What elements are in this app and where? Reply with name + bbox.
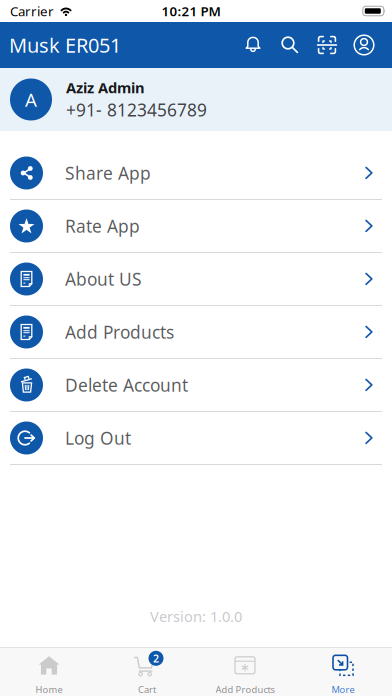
button[interactable]: Search [279, 34, 301, 56]
staticText: Add Products [215, 683, 274, 696]
staticText: Carrier [10, 2, 54, 20]
button[interactable]: Notifications [242, 34, 264, 56]
staticText: Add Products [65, 320, 174, 343]
button[interactable]: 2 [98, 648, 196, 696]
staticText: About US [65, 267, 142, 290]
button[interactable]: Add Products [0, 306, 392, 359]
button[interactable]: Delete Account [0, 359, 392, 412]
button[interactable]: A [0, 68, 392, 131]
button[interactable]: Add Products [196, 648, 294, 696]
button[interactable]: Rate App [0, 200, 392, 253]
button[interactable]: More [294, 648, 392, 696]
button[interactable]: Share App [0, 147, 392, 200]
button[interactable]: Scan [316, 34, 338, 56]
staticText: 2 [153, 651, 159, 665]
button[interactable]: Log Out [0, 412, 392, 465]
staticText: Home [35, 683, 62, 696]
button[interactable]: Profile [353, 34, 375, 56]
staticText: +91- 8123456789 [66, 98, 207, 121]
staticText: Share App [65, 161, 151, 184]
staticText: Musk ER051 [9, 32, 121, 58]
staticText: Cart [138, 683, 156, 696]
staticText: Aziz Admin [66, 78, 145, 97]
button[interactable]: Home [0, 648, 98, 696]
staticText: Delete Account [65, 373, 188, 396]
staticText: Rate App [65, 214, 140, 237]
staticText: More [331, 683, 354, 696]
staticText: 10:21 PM [161, 2, 220, 20]
button[interactable]: About US [0, 253, 392, 306]
staticText: A [25, 87, 37, 112]
staticText: Log Out [65, 426, 131, 449]
staticText: Version: 1.0.0 [150, 606, 242, 626]
